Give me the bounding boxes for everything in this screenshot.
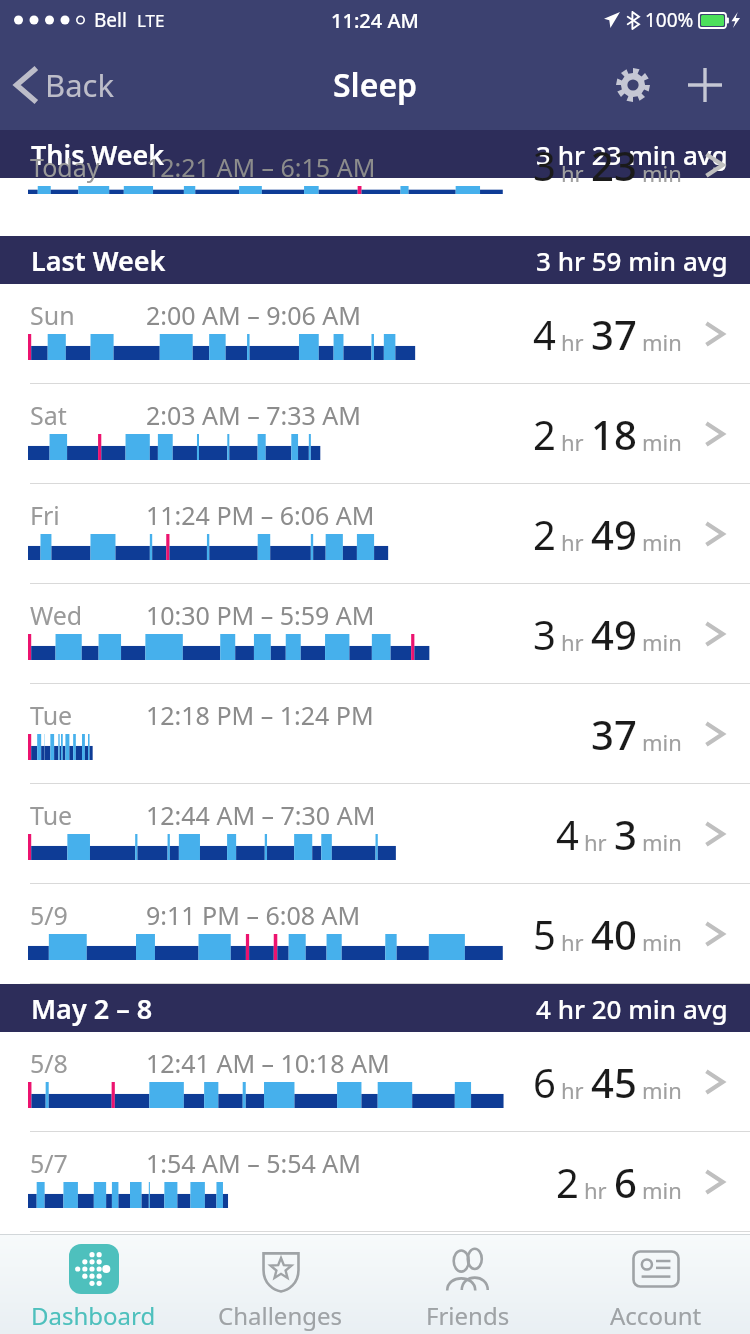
staticText: This Week xyxy=(31,136,165,173)
staticText: 3 hr 23 min avg xyxy=(536,137,728,172)
button[interactable]: Back xyxy=(0,56,128,114)
staticText: 3 xyxy=(614,807,637,861)
staticText: 3 xyxy=(533,607,556,661)
staticText: Tue xyxy=(30,798,73,832)
staticText: 4 xyxy=(533,307,556,361)
staticText: min xyxy=(642,427,682,457)
staticText: Account xyxy=(610,1299,702,1332)
button[interactable]: 5/9 xyxy=(0,884,750,984)
button[interactable]: Add sleep log xyxy=(678,58,732,112)
staticText: min xyxy=(642,727,682,757)
staticText: LTE xyxy=(137,9,165,32)
staticText: 49 xyxy=(591,507,637,561)
staticText: 5/8 xyxy=(30,1046,68,1080)
staticText: 12:41 AM – 10:18 AM xyxy=(146,1046,390,1080)
staticText: min xyxy=(642,627,682,657)
staticText: 5 xyxy=(533,907,556,961)
staticText: Today xyxy=(30,150,100,184)
staticText: 10:30 PM – 5:59 AM xyxy=(146,598,375,632)
staticText: 3 xyxy=(533,138,556,192)
button[interactable]: Today xyxy=(0,178,750,236)
button[interactable]: Friends xyxy=(374,1235,562,1334)
staticText: min xyxy=(642,527,682,557)
staticText: min xyxy=(642,827,682,857)
staticText: 2:00 AM – 9:06 AM xyxy=(146,298,362,332)
staticText: hr xyxy=(584,1175,607,1205)
staticText: 18 xyxy=(591,407,637,461)
button[interactable]: Dashboard xyxy=(0,1235,187,1334)
staticText: hr xyxy=(561,527,584,557)
staticText: May 2 – 8 xyxy=(31,990,153,1027)
staticText: 2 xyxy=(533,507,556,561)
staticText: 40 xyxy=(591,907,637,961)
button[interactable]: Account xyxy=(562,1235,750,1334)
staticText: Sun xyxy=(30,298,75,332)
staticText: hr xyxy=(561,627,584,657)
staticText: 37 xyxy=(591,307,637,361)
other: Open 5/7 sleep detail xyxy=(702,1168,730,1196)
staticText: 2:03 AM – 7:33 AM xyxy=(146,398,362,432)
staticText: Wed xyxy=(30,598,83,632)
staticText: 12:44 AM – 7:30 AM xyxy=(146,798,376,832)
other: Open Sat sleep detail xyxy=(702,420,730,448)
staticText: min xyxy=(642,1175,682,1205)
button[interactable]: 5/7 xyxy=(0,1132,750,1232)
staticText: Dashboard xyxy=(31,1299,156,1332)
staticText: 9:11 PM – 6:08 AM xyxy=(146,898,361,932)
other: Open 5/8 sleep detail xyxy=(702,1068,730,1096)
staticText: 12:21 AM – 6:15 AM xyxy=(146,150,376,184)
other: Open Fri sleep detail xyxy=(702,520,730,548)
staticText: 3 hr 59 min avg xyxy=(536,243,728,278)
staticText: 37 xyxy=(591,707,637,761)
other: Open Wed sleep detail xyxy=(702,620,730,648)
staticText: min xyxy=(642,1075,682,1105)
staticText: 23 xyxy=(591,138,637,192)
staticText: Friends xyxy=(426,1299,510,1332)
staticText: 4 hr 20 min avg xyxy=(536,991,728,1026)
staticText: min xyxy=(642,927,682,957)
button[interactable]: Fri xyxy=(0,484,750,584)
staticText: hr xyxy=(561,327,584,357)
staticText: Back xyxy=(45,64,114,106)
staticText: Tue xyxy=(30,698,73,732)
staticText: hr xyxy=(561,1075,584,1105)
other: Open Sun sleep detail xyxy=(702,320,730,348)
staticText: Fri xyxy=(30,498,60,532)
button[interactable]: Settings xyxy=(606,58,660,112)
button[interactable]: Sun xyxy=(0,284,750,384)
button[interactable]: Challenges xyxy=(187,1235,374,1334)
staticText: 5/7 xyxy=(30,1146,68,1180)
staticText: 100% xyxy=(645,7,694,33)
staticText: 2 xyxy=(556,1155,579,1209)
other: Open Tue sleep detail xyxy=(702,720,730,748)
staticText: Last Week xyxy=(31,242,166,279)
button[interactable]: Wed xyxy=(0,584,750,684)
staticText: Bell xyxy=(94,7,127,33)
staticText: 11:24 AM xyxy=(331,7,419,34)
staticText: min xyxy=(642,327,682,357)
staticText: 6 xyxy=(614,1155,637,1209)
staticText: 5/9 xyxy=(30,898,68,932)
staticText: hr xyxy=(561,427,584,457)
staticText: hr xyxy=(561,158,584,188)
staticText: min xyxy=(642,158,682,188)
staticText: 49 xyxy=(591,607,637,661)
button[interactable]: Sat xyxy=(0,384,750,484)
staticText: 12:18 PM – 1:24 PM xyxy=(146,698,374,732)
staticText: 1:54 AM – 5:54 AM xyxy=(146,1146,362,1180)
button[interactable]: Tue xyxy=(0,684,750,784)
other: Open 5/9 sleep detail xyxy=(702,920,730,948)
button[interactable]: Tue xyxy=(0,784,750,884)
staticText: 2 xyxy=(533,407,556,461)
staticText: hr xyxy=(584,827,607,857)
staticText: 45 xyxy=(591,1055,637,1109)
staticText: 4 xyxy=(556,807,579,861)
staticText: Challenges xyxy=(218,1299,343,1332)
staticText: hr xyxy=(561,927,584,957)
staticText: Sat xyxy=(30,398,67,432)
staticText: 6 xyxy=(533,1055,556,1109)
button[interactable]: 5/8 xyxy=(0,1032,750,1132)
staticText: 11:24 PM – 6:06 AM xyxy=(146,498,375,532)
staticText: Sleep xyxy=(333,63,418,107)
other: Open Tue sleep detail xyxy=(702,820,730,848)
